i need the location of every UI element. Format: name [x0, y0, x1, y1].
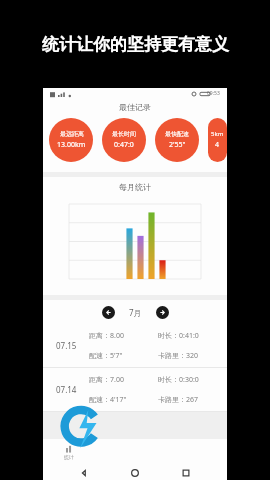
staticText: 最长时间 [112, 130, 136, 138]
button[interactable]: 最远距离 [49, 118, 93, 162]
button[interactable]: Recents [176, 465, 196, 480]
staticText: 最快配速 [165, 130, 189, 138]
staticText: 时长：0:41:0 [158, 331, 199, 341]
staticText: 卡路里：267 [158, 395, 199, 405]
staticText: 最远距离 [60, 130, 84, 138]
staticText: 卡路里：320 [158, 351, 199, 361]
staticText: 07.14 [56, 384, 77, 395]
button[interactable]: Back [74, 465, 94, 480]
staticText: 配速：5'7" [89, 351, 123, 361]
staticText: 最佳记录 [119, 102, 151, 112]
staticText: 5km [211, 130, 224, 138]
staticText: 统计让你的坚持更有意义 [42, 34, 229, 55]
button[interactable]: 5km [208, 118, 227, 162]
button[interactable]: 07.15 [43, 324, 227, 368]
button[interactable]: 07.14 [43, 368, 227, 412]
button[interactable]: Home [125, 465, 145, 480]
staticText: 4 [215, 140, 220, 150]
staticText: 0:47:0 [114, 140, 134, 150]
staticText: 每月统计 [119, 182, 151, 192]
staticText: 09:53 [207, 90, 220, 97]
staticText: 2'55" [169, 140, 186, 150]
staticText: 距离：8.00 [89, 331, 124, 341]
button[interactable]: 最快配速 [155, 118, 199, 162]
button[interactable]: 统计 [43, 439, 95, 465]
staticText: 07.15 [56, 340, 77, 351]
staticText: 时长：0:30:0 [158, 375, 199, 385]
staticText: 距离：7.00 [89, 375, 124, 385]
staticText: 7月 [129, 307, 142, 318]
staticText: 统计 [64, 454, 74, 460]
button[interactable]: Next month [156, 306, 169, 319]
staticText: 配速：4'17" [89, 395, 127, 405]
button[interactable]: Previous month [102, 306, 115, 319]
button[interactable]: 最长时间 [102, 118, 146, 162]
staticText: 13.00km [57, 140, 86, 150]
